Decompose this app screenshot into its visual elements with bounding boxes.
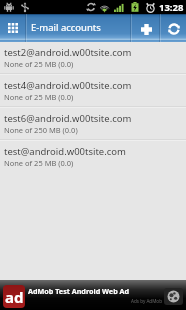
staticText: None of 25 MB (0.0) (4, 59, 74, 69)
staticText: Ads by AdMob (131, 298, 162, 304)
button[interactable]: Accounts menu (0, 14, 25, 42)
button[interactable]: Open ad in browser (164, 288, 183, 305)
staticText: AdMob Test Android Web Ad (28, 286, 130, 296)
staticText: 13:28 (159, 1, 184, 14)
button[interactable]: test2@android.w00tsite.com (0, 42, 186, 73)
staticText: None of 250 MB (0.0) (4, 125, 78, 135)
staticText: None of 25 MB (0.0) (4, 92, 74, 102)
staticText: test@android.w00tsite.com (4, 145, 126, 158)
staticText: ad (5, 287, 24, 307)
button[interactable]: Refresh (160, 14, 186, 42)
staticText: test2@android.w00tsite.com (4, 46, 132, 59)
button[interactable]: test6@android.w00tsite.com (0, 108, 186, 139)
staticText: E-mail accounts (31, 21, 101, 34)
button[interactable]: test@android.w00tsite.com (0, 141, 186, 172)
staticText: test4@android.w00tsite.com (4, 79, 132, 92)
button[interactable]: test4@android.w00tsite.com (0, 75, 186, 106)
staticText: None of 25 MB (0.0) (4, 158, 74, 168)
button[interactable]: AdMob Test Android Web Ad (0, 280, 186, 310)
staticText: test6@android.w00tsite.com (4, 112, 132, 125)
button[interactable]: Add account (131, 14, 160, 42)
